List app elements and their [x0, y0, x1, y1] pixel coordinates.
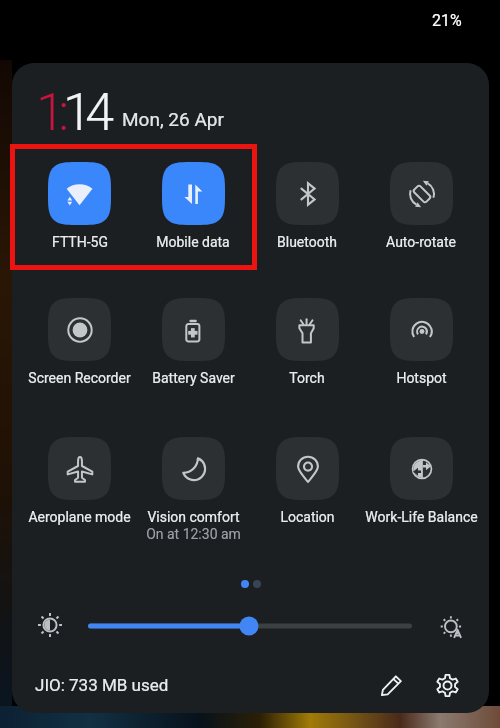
- button[interactable]: Auto brightness: [434, 608, 467, 641]
- staticText: 21%: [432, 11, 462, 30]
- staticText: 1:: [36, 82, 63, 143]
- button[interactable]: Mobile data: [136, 162, 250, 250]
- button[interactable]: Edit: [374, 667, 410, 703]
- button[interactable]: Settings: [429, 667, 465, 703]
- button[interactable]: Brightness slider: [88, 613, 412, 639]
- staticText: Hotspot: [396, 370, 447, 386]
- button[interactable]: Auto-rotate: [364, 162, 478, 250]
- staticText: Battery Saver: [152, 370, 235, 386]
- staticText: Screen Recorder: [28, 370, 131, 386]
- staticText: Vision comfort: [147, 509, 240, 525]
- staticText: Mobile data: [156, 234, 230, 250]
- staticText: On at 12:30 am: [146, 526, 241, 542]
- button[interactable]: Vision comfort: [136, 437, 250, 542]
- button[interactable]: Aeroplane mode: [23, 437, 136, 525]
- staticText: JIO: 733 MB used: [35, 675, 169, 695]
- staticText: Torch: [289, 370, 325, 386]
- button[interactable]: Torch: [250, 298, 364, 386]
- button[interactable]: Location: [250, 437, 364, 525]
- button[interactable]: Hotspot: [364, 298, 478, 386]
- staticText: Auto-rotate: [386, 234, 456, 250]
- staticText: 14: [63, 82, 108, 143]
- button[interactable]: Battery Saver: [136, 298, 250, 386]
- staticText: Bluetooth: [277, 234, 337, 250]
- staticText: FTTH-5G: [52, 234, 108, 250]
- button[interactable]: Screen Recorder: [23, 298, 136, 386]
- staticText: Mon, 26 Apr: [122, 108, 224, 130]
- button[interactable]: FTTH-5G: [23, 162, 136, 250]
- button[interactable]: Brightness: [34, 609, 66, 641]
- staticText: Aeroplane mode: [28, 509, 131, 525]
- button[interactable]: Work-Life Balance: [364, 437, 478, 525]
- staticText: Work-Life Balance: [365, 509, 478, 525]
- staticText: Location: [280, 509, 335, 525]
- button[interactable]: Bluetooth: [250, 162, 364, 250]
